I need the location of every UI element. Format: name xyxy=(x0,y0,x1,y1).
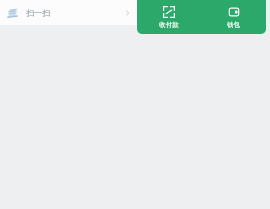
button[interactable]: 收付款 xyxy=(137,0,201,34)
staticText: 扫一扫 xyxy=(26,8,50,18)
button[interactable]: 钱包 xyxy=(201,0,266,34)
staticText: 钱包 xyxy=(227,21,240,29)
staticText: 收付款 xyxy=(159,21,179,29)
button[interactable]: 扫一扫 xyxy=(0,0,137,25)
